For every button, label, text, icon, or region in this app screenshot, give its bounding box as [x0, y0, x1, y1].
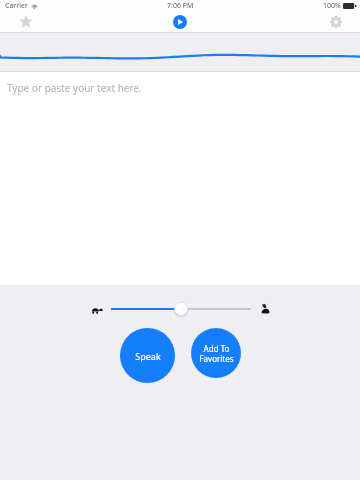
button[interactable]: Settings [324, 12, 348, 32]
button[interactable]: Type or paste your text here. [0, 72, 360, 285]
staticText: Carrier [5, 1, 28, 11]
staticText: Add To Favorites [199, 343, 234, 364]
button[interactable]: Favorites [14, 12, 38, 32]
staticText: Type or paste your text here. [7, 81, 142, 95]
button[interactable]: Speech rate [111, 299, 251, 319]
button[interactable]: Speak [120, 328, 175, 383]
button[interactable]: Add To Favorites [191, 328, 241, 378]
staticText: Speak [135, 350, 161, 362]
staticText: 100% [323, 1, 341, 11]
button[interactable]: Play [169, 12, 191, 32]
staticText: 7:06 PM [167, 1, 194, 11]
